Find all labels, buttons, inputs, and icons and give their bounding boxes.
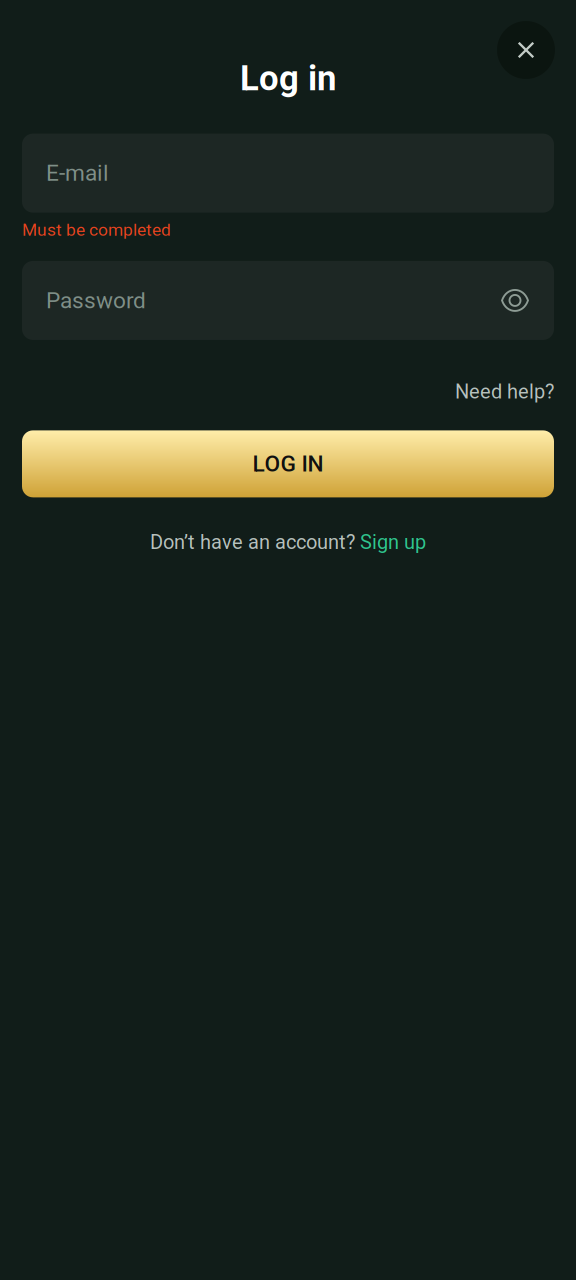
button[interactable]: E-mail xyxy=(22,134,554,213)
button[interactable]: LOG IN xyxy=(22,430,554,497)
staticText: Must be completed xyxy=(22,220,171,240)
button[interactable]: Need help? xyxy=(455,380,554,403)
staticText: Need help? xyxy=(455,380,554,403)
button[interactable]: Show password xyxy=(493,261,537,340)
staticText: E-mail xyxy=(46,160,109,186)
button[interactable]: Close xyxy=(497,21,555,79)
staticText: Don’t have an account? xyxy=(150,530,355,554)
staticText: Sign up xyxy=(360,530,426,554)
staticText: Password xyxy=(46,287,146,314)
staticText: LOG IN xyxy=(252,451,323,477)
button[interactable]: Password xyxy=(22,261,493,340)
button[interactable]: Sign up xyxy=(360,530,426,554)
staticText: Log in xyxy=(240,58,336,99)
